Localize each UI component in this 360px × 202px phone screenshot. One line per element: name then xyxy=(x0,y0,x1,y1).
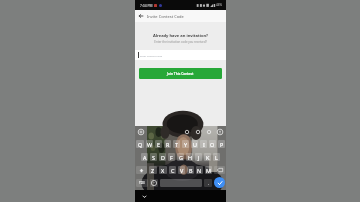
staticText: V xyxy=(180,167,184,174)
button[interactable]: X xyxy=(159,166,167,174)
button[interactable]: P xyxy=(218,140,225,148)
button[interactable]: Q xyxy=(136,140,144,148)
staticText: M xyxy=(206,167,211,174)
button[interactable]: E xyxy=(155,140,162,148)
button[interactable]: Translate xyxy=(205,128,213,136)
staticText: S xyxy=(152,154,155,161)
button[interactable]: C xyxy=(169,166,176,174)
button[interactable]: Shift xyxy=(136,166,147,174)
button[interactable]: W xyxy=(146,140,153,148)
staticText: Q xyxy=(138,141,143,148)
staticText: P xyxy=(220,141,224,148)
button[interactable]: Backspace xyxy=(214,166,225,174)
button[interactable]: R xyxy=(164,140,171,148)
staticText: Join This Contest xyxy=(167,72,194,76)
other: Hide keyboard xyxy=(142,194,147,199)
button[interactable]: Space xyxy=(160,179,202,187)
button[interactable]: L xyxy=(213,153,220,161)
staticText: H xyxy=(188,154,192,161)
button[interactable]: J xyxy=(195,153,202,161)
staticText: D xyxy=(161,154,165,161)
staticText: K xyxy=(206,154,210,161)
button[interactable]: H xyxy=(186,153,193,161)
button[interactable]: I xyxy=(200,140,207,148)
button[interactable]: ?123 xyxy=(136,179,148,187)
button[interactable]: Enter xyxy=(214,177,225,188)
button[interactable]: Enter Contest Code xyxy=(135,50,226,60)
staticText: I xyxy=(203,141,205,148)
staticText: . xyxy=(208,181,209,186)
staticText: 7:04 PM xyxy=(140,3,153,7)
button[interactable]: O xyxy=(209,140,216,148)
button[interactable]: M xyxy=(205,166,212,174)
button[interactable]: Emoji xyxy=(150,179,158,187)
button[interactable]: G xyxy=(177,153,184,161)
staticText: B xyxy=(189,167,193,174)
staticText: Z xyxy=(151,167,155,174)
button[interactable]: V xyxy=(178,166,185,174)
button[interactable]: Y xyxy=(182,140,189,148)
staticText: O xyxy=(210,141,215,148)
button[interactable]: Keyboard settings xyxy=(137,128,145,136)
button[interactable]: Z xyxy=(149,166,157,174)
staticText: G xyxy=(179,154,183,161)
staticText: Y xyxy=(184,141,188,148)
staticText: X xyxy=(161,167,165,174)
button[interactable]: Voice input xyxy=(216,128,224,136)
staticText: N xyxy=(197,167,202,174)
staticText: J xyxy=(198,154,200,161)
staticText: Already have an invitation? xyxy=(135,33,226,39)
staticText: C xyxy=(171,167,175,174)
button[interactable]: D xyxy=(159,153,166,161)
button[interactable]: T xyxy=(173,140,180,148)
staticText: E xyxy=(157,141,160,148)
button[interactable]: K xyxy=(204,153,211,161)
staticText: Invite Contest Code xyxy=(147,14,184,19)
staticText: R xyxy=(166,141,170,148)
staticText: 44% xyxy=(216,3,222,7)
button[interactable]: Join This Contest xyxy=(139,68,222,79)
staticText: L xyxy=(215,154,218,161)
staticText: U xyxy=(193,141,197,148)
button[interactable]: B xyxy=(187,166,194,174)
staticText: Enter Contest Code xyxy=(140,54,163,57)
button[interactable]: A xyxy=(141,153,148,161)
staticText: W xyxy=(147,141,153,148)
staticText: A xyxy=(143,154,147,161)
button[interactable]: Back xyxy=(135,10,147,22)
button[interactable]: Gif xyxy=(183,128,191,136)
staticText: F xyxy=(170,154,173,161)
staticText: Enter the invitation code you received? xyxy=(135,40,226,44)
button[interactable]: F xyxy=(168,153,175,161)
button[interactable]: U xyxy=(191,140,198,148)
button[interactable]: Sticker xyxy=(194,128,202,136)
button[interactable]: Period xyxy=(204,179,212,187)
button[interactable]: N xyxy=(196,166,203,174)
button[interactable]: S xyxy=(150,153,157,161)
staticText: T xyxy=(175,141,178,148)
staticText: ?123 xyxy=(139,181,145,185)
